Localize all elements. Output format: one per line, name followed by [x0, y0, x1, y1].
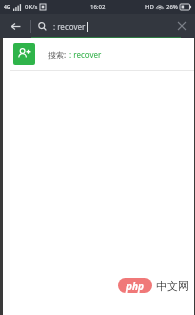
staticText: 4G	[4, 4, 11, 11]
staticText: HD	[145, 3, 154, 11]
staticText: php	[126, 279, 144, 293]
staticText: 26%	[166, 3, 178, 11]
staticText: 16:02	[90, 3, 106, 11]
staticText: 搜索:	[48, 49, 67, 60]
staticText: : recover	[67, 49, 102, 60]
button[interactable]: Clear	[169, 14, 195, 38]
button[interactable]: Back	[0, 14, 30, 38]
button[interactable]: 搜索:	[0, 38, 195, 70]
staticText: 中文网	[156, 279, 189, 293]
staticText: 0K/s	[25, 3, 38, 11]
staticText: : recover	[53, 21, 86, 32]
